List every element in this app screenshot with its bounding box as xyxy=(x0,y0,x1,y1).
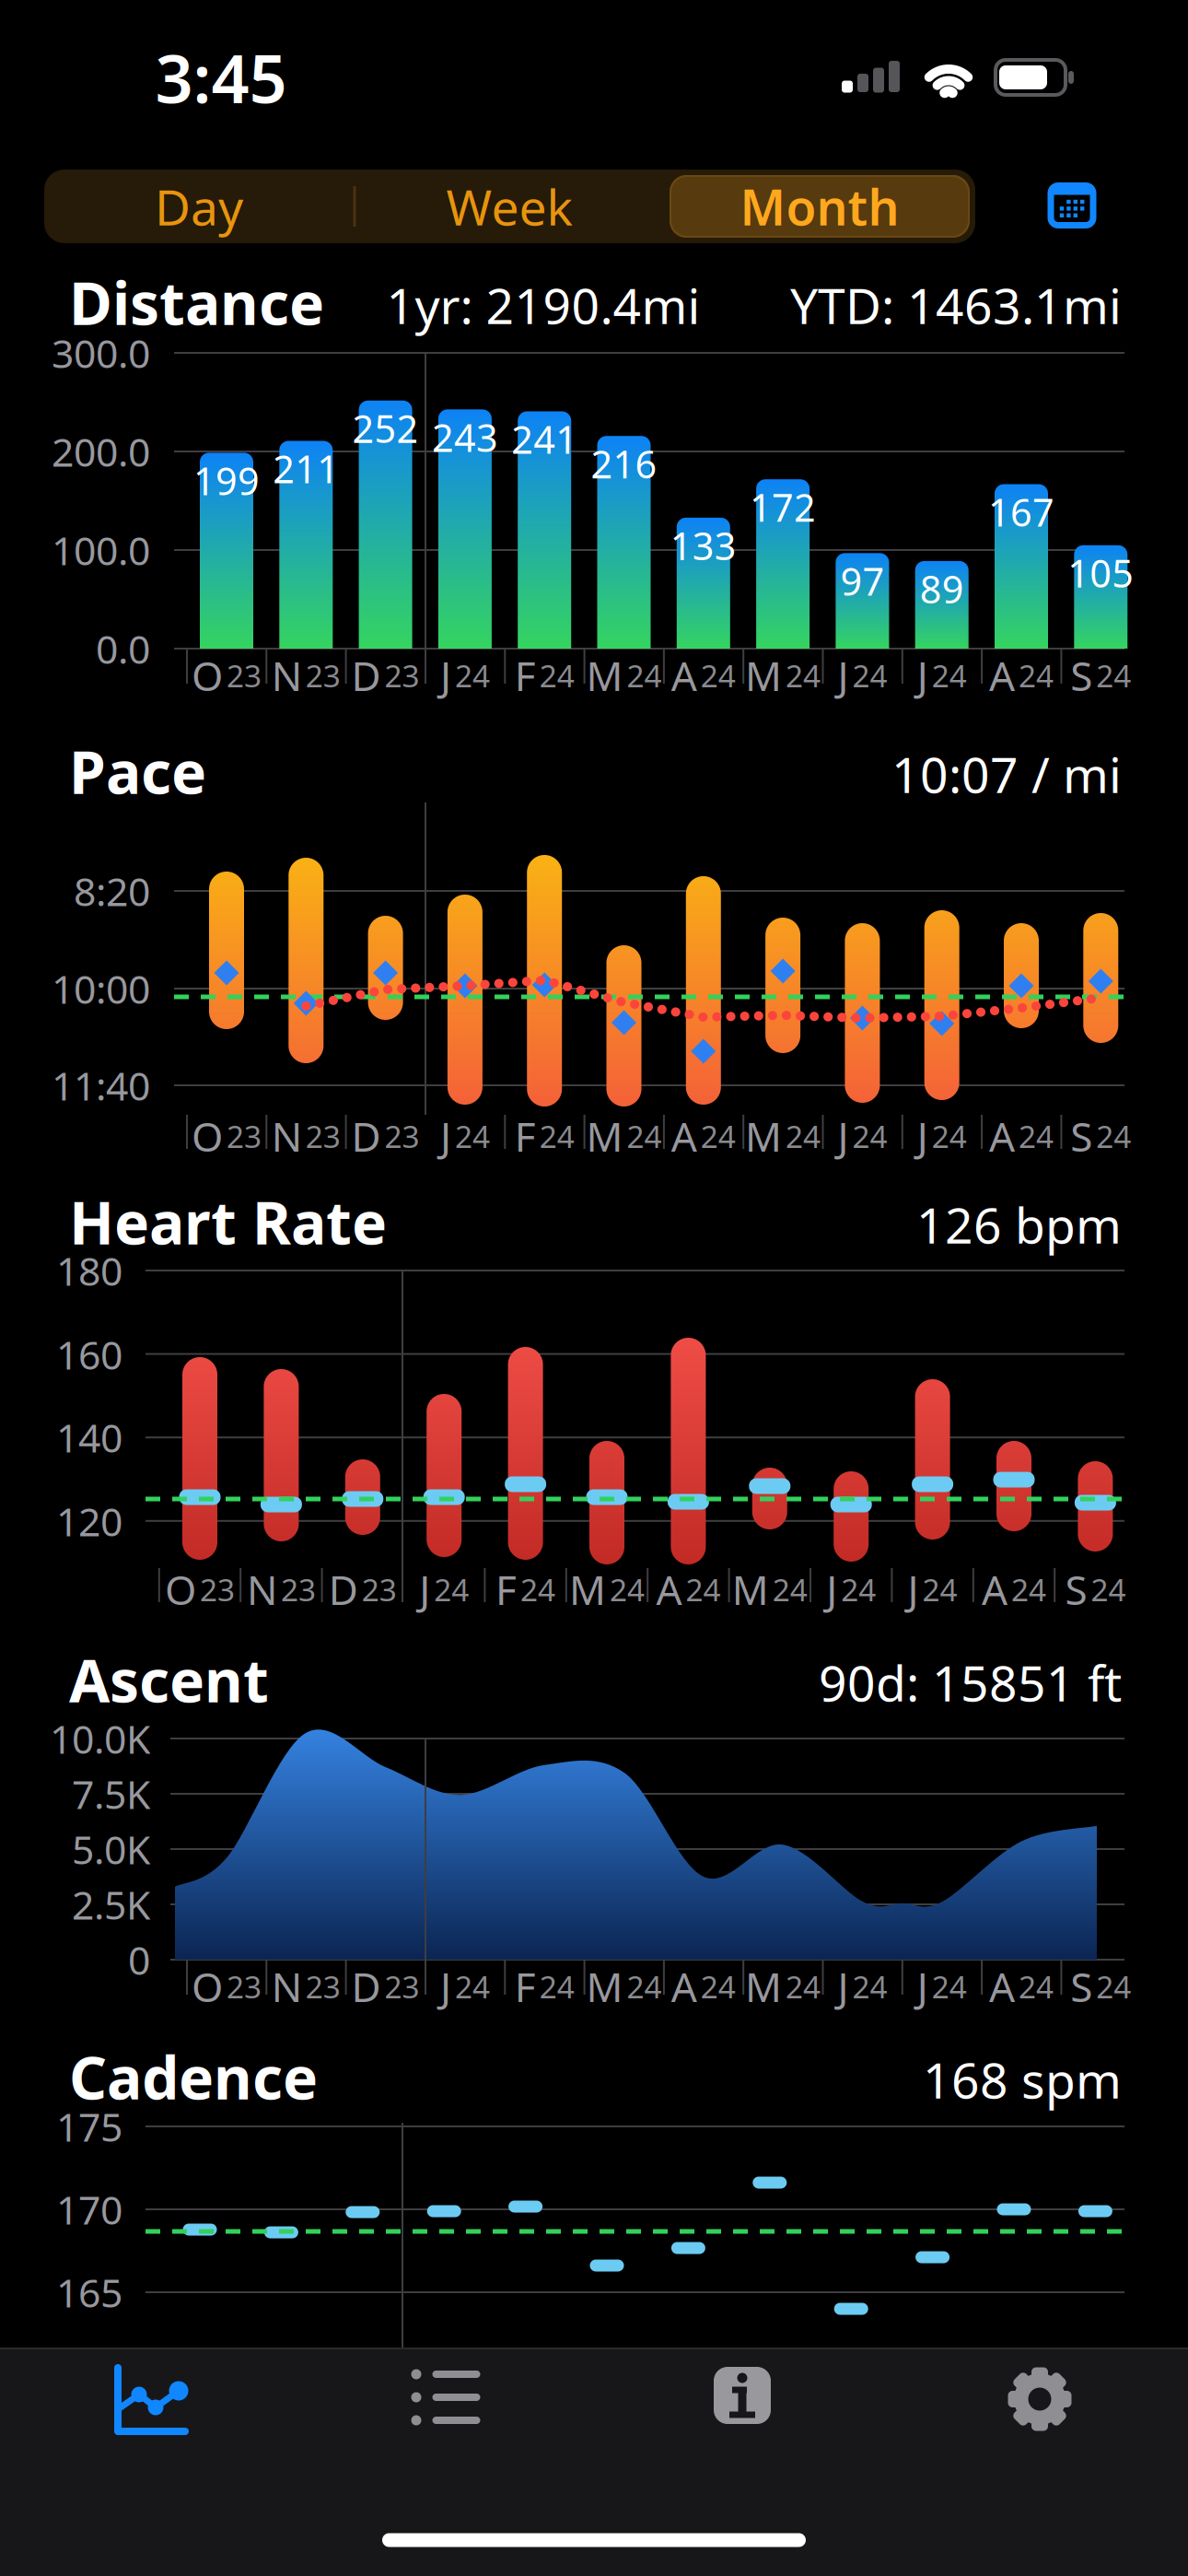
staticText: N xyxy=(271,1109,302,1163)
button[interactable]: Day xyxy=(47,171,351,241)
staticText: Week xyxy=(446,174,572,239)
staticText: 172 xyxy=(750,482,816,532)
staticText: 23 xyxy=(281,1569,316,1610)
staticText: 24 xyxy=(627,1116,662,1156)
button[interactable]: Month xyxy=(668,171,972,241)
staticText: S xyxy=(1070,648,1092,702)
staticText: YTD: 1463.1mi xyxy=(790,272,1122,338)
staticText: 0 xyxy=(128,1934,150,1986)
staticText: J xyxy=(440,1959,451,2013)
staticText: 23 xyxy=(385,655,420,696)
staticText: J xyxy=(837,1959,849,2013)
staticText: 24 xyxy=(1096,655,1131,696)
staticText: 24 xyxy=(841,1569,876,1610)
staticText: 24 xyxy=(786,1966,821,2007)
staticText: 133 xyxy=(670,520,737,571)
staticText: Distance xyxy=(69,263,324,341)
staticText: A xyxy=(671,1109,697,1163)
staticText: J xyxy=(440,1109,451,1163)
staticText: 24 xyxy=(1011,1569,1046,1610)
staticText: 300.0 xyxy=(52,327,150,379)
staticText: N xyxy=(271,1959,302,2013)
staticText: 24 xyxy=(539,1966,574,2007)
button[interactable]: Settings xyxy=(966,2348,1113,2450)
staticText: 24 xyxy=(701,655,736,696)
staticText: J xyxy=(440,648,451,702)
staticText: F xyxy=(515,1959,536,2013)
staticText: 23 xyxy=(306,655,341,696)
staticText: 120 xyxy=(56,1495,122,1547)
staticText: Heart Rate xyxy=(69,1183,387,1261)
staticText: M xyxy=(586,648,623,702)
button[interactable]: Week xyxy=(357,171,661,241)
staticText: 7.5K xyxy=(72,1768,150,1820)
staticText: J xyxy=(917,648,928,702)
staticText: 140 xyxy=(56,1411,122,1463)
staticText: Ascent xyxy=(69,1640,269,1719)
staticText: 24 xyxy=(610,1569,645,1610)
staticText: A xyxy=(989,1109,1015,1163)
staticText: M xyxy=(745,1109,782,1163)
staticText: Cadence xyxy=(69,2037,318,2116)
staticText: 24 xyxy=(686,1569,721,1610)
staticText: D xyxy=(351,1959,381,2013)
staticText: S xyxy=(1070,1109,1092,1163)
staticText: M xyxy=(745,648,782,702)
staticText: 24 xyxy=(1019,1116,1054,1156)
button[interactable]: Activity List xyxy=(372,2347,519,2448)
staticText: 24 xyxy=(922,1569,957,1610)
staticText: 24 xyxy=(520,1569,555,1610)
staticText: 24 xyxy=(1019,1966,1054,2007)
staticText: 23 xyxy=(306,1116,341,1156)
staticText: M xyxy=(745,1959,782,2013)
staticText: O xyxy=(192,1959,223,2013)
staticText: 24 xyxy=(852,1116,887,1156)
button[interactable]: Calendar xyxy=(1044,180,1100,231)
staticText: 24 xyxy=(932,655,967,696)
staticText: 175 xyxy=(56,2100,122,2153)
staticText: N xyxy=(247,1562,277,1616)
staticText: 24 xyxy=(627,1966,662,2007)
staticText: 100.0 xyxy=(52,524,150,576)
staticText: D xyxy=(351,648,381,702)
staticText: 24 xyxy=(1019,655,1054,696)
staticText: 211 xyxy=(273,443,339,494)
staticText: 2.5K xyxy=(72,1878,150,1931)
staticText: 199 xyxy=(193,455,260,506)
staticText: 168 spm xyxy=(923,2047,1122,2112)
staticText: 180 xyxy=(56,1244,122,1297)
button[interactable] xyxy=(670,175,970,238)
staticText: 10:07 / mi xyxy=(891,741,1122,807)
staticText: 23 xyxy=(306,1966,341,2007)
staticText: M xyxy=(569,1562,606,1616)
staticText: 11:40 xyxy=(52,1059,150,1111)
staticText: A xyxy=(656,1562,682,1616)
staticText: 3:45 xyxy=(155,33,287,121)
staticText: 24 xyxy=(701,1116,736,1156)
staticText: S xyxy=(1065,1562,1087,1616)
button[interactable]: Charts xyxy=(75,2349,222,2451)
staticText: 170 xyxy=(56,2183,122,2235)
button[interactable]: Info xyxy=(669,2345,816,2446)
staticText: 23 xyxy=(385,1116,420,1156)
staticText: M xyxy=(732,1562,769,1616)
staticText: O xyxy=(192,1109,223,1163)
staticText: 24 xyxy=(772,1569,807,1610)
staticText: 89 xyxy=(920,563,964,614)
staticText: 24 xyxy=(932,1116,967,1156)
staticText: 160 xyxy=(56,1328,122,1381)
staticText: 24 xyxy=(932,1966,967,2007)
staticText: 24 xyxy=(852,1966,887,2007)
staticText: A xyxy=(982,1562,1007,1616)
staticText: 10:00 xyxy=(52,962,150,1015)
staticText: 24 xyxy=(434,1569,469,1610)
staticText: 24 xyxy=(455,1116,490,1156)
staticText: J xyxy=(908,1562,919,1616)
staticText: 0.0 xyxy=(96,623,150,675)
staticText: 24 xyxy=(627,655,662,696)
staticText: 241 xyxy=(511,414,578,464)
staticText: A xyxy=(671,1959,697,2013)
staticText: 5.0K xyxy=(72,1823,150,1875)
staticText: 10.0K xyxy=(50,1712,150,1765)
staticText: 24 xyxy=(455,1966,490,2007)
